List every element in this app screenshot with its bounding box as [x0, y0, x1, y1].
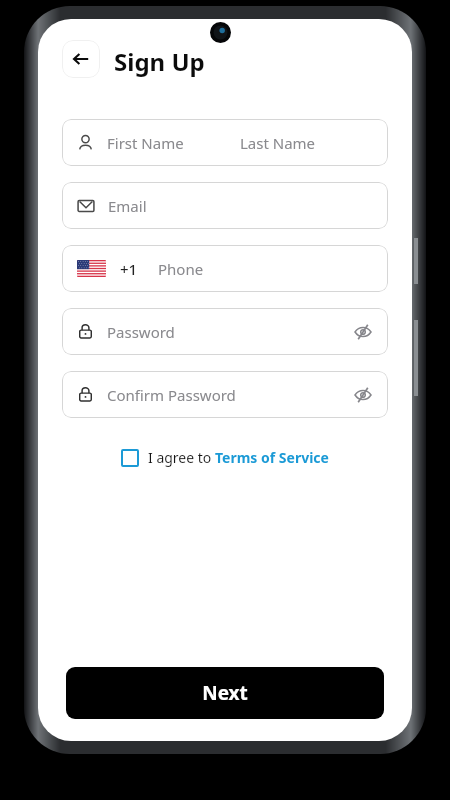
staticText: First Name [107, 133, 184, 153]
staticText: Phone [158, 259, 204, 279]
staticText: Next [202, 680, 248, 706]
staticText: Sign Up [114, 45, 205, 78]
staticText: Confirm Password [107, 385, 236, 405]
button[interactable]: Terms of Service [215, 448, 329, 467]
button[interactable]: Show password [353, 385, 373, 405]
staticText: Password [107, 322, 175, 342]
button[interactable]: Next [66, 667, 384, 719]
staticText: I agree to [148, 448, 215, 467]
button[interactable]: Password [62, 308, 388, 355]
button[interactable]: Email [62, 182, 388, 229]
button[interactable]: Confirm Password [62, 371, 388, 418]
button[interactable]: Back [62, 40, 100, 78]
button[interactable]: First Name [62, 119, 388, 166]
staticText: +1 [120, 259, 138, 279]
button[interactable]: I agree to [62, 448, 388, 467]
staticText: Email [108, 196, 147, 216]
button[interactable]: Show password [353, 322, 373, 342]
button[interactable]: +1 [62, 245, 388, 292]
staticText: Last Name [240, 133, 316, 153]
